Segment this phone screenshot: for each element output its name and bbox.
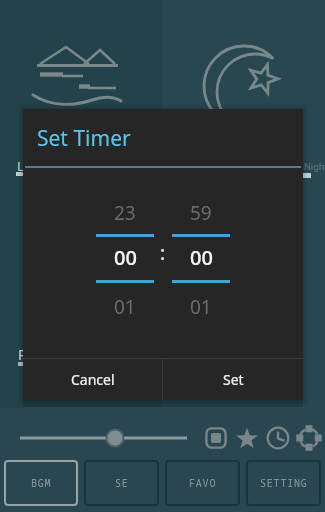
staticText: 59: [190, 200, 212, 226]
staticText: Set Timer: [37, 124, 131, 153]
staticText: 01: [114, 294, 136, 320]
staticText: :: [160, 240, 166, 266]
button[interactable]: Favorite: [231, 424, 262, 452]
staticText: SETTING: [260, 476, 308, 490]
staticText: FAVO: [189, 476, 217, 490]
staticText: 00: [190, 244, 213, 271]
button[interactable]: Timer: [262, 424, 293, 452]
button[interactable]: Stop: [200, 424, 231, 452]
staticText: Cancel: [71, 370, 115, 389]
staticText: Rain: [18, 345, 47, 364]
button[interactable]: Repeat: [293, 424, 324, 452]
button[interactable]: SETTING: [246, 460, 321, 506]
button[interactable]: Volume: [8, 424, 200, 452]
staticText: SE: [115, 476, 129, 490]
button[interactable]: FAVO: [165, 460, 240, 506]
button[interactable]: Cancel: [23, 359, 162, 400]
button[interactable]: Decrement: [96, 283, 154, 321]
staticText: 23: [114, 200, 136, 226]
button[interactable]: Increment: [96, 191, 154, 233]
button[interactable]: Night: [162, 0, 325, 408]
staticText: 01: [190, 294, 212, 320]
button[interactable]: Set: [163, 359, 303, 400]
staticText: Set: [223, 370, 244, 389]
button[interactable]: SE: [84, 460, 159, 506]
staticText: Night: [304, 160, 325, 172]
staticText: BGM: [31, 476, 52, 490]
button[interactable]: BGM: [4, 460, 78, 506]
button[interactable]: Increment: [172, 191, 230, 233]
staticText: Lake: [17, 157, 46, 175]
button[interactable]: Decrement: [172, 283, 230, 321]
staticText: 00: [114, 244, 137, 271]
button[interactable]: Scenery: [0, 0, 162, 408]
